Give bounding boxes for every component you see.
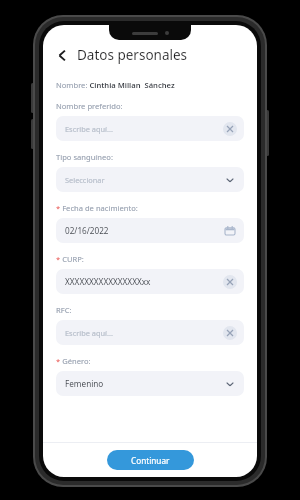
- staticText: XXXXXXXXXXXXXXXXxx: [65, 276, 151, 287]
- button[interactable]: Seleccionar: [56, 167, 244, 192]
- staticText: Femenino: [65, 378, 104, 389]
- button[interactable]: Femenino: [56, 371, 244, 396]
- button[interactable]: Escribe aquí...: [56, 320, 244, 345]
- button[interactable]: Open dropdown: [223, 377, 237, 391]
- staticText: Tipo sanguíneo:: [56, 152, 113, 162]
- button[interactable]: Clear: [223, 275, 237, 289]
- staticText: Nombre: Cinthia Millan Sánchez: [56, 80, 175, 90]
- button[interactable]: Clear: [223, 122, 237, 136]
- button[interactable]: Clear: [223, 326, 237, 340]
- button[interactable]: Back: [52, 45, 72, 65]
- staticText: * Fecha de nacimiento:: [56, 203, 138, 213]
- staticText: Datos personales: [77, 46, 188, 64]
- staticText: Nombre preferido:: [56, 101, 123, 111]
- staticText: Escribe aquí...: [65, 328, 113, 338]
- staticText: 02/16/2022: [65, 225, 109, 236]
- button[interactable]: Escribe aquí...: [56, 116, 244, 141]
- staticText: Continuar: [131, 455, 170, 466]
- staticText: RFC:: [56, 305, 72, 315]
- button[interactable]: Pick date: [223, 224, 237, 238]
- button[interactable]: 02/16/2022: [56, 218, 244, 243]
- staticText: Escribe aquí...: [65, 124, 113, 134]
- staticText: * Género:: [56, 356, 91, 366]
- staticText: Seleccionar: [65, 175, 105, 185]
- button[interactable]: XXXXXXXXXXXXXXXXxx: [56, 269, 244, 294]
- button[interactable]: Open dropdown: [223, 173, 237, 187]
- staticText: * CURP:: [56, 254, 84, 264]
- button[interactable]: Continuar: [107, 450, 194, 470]
